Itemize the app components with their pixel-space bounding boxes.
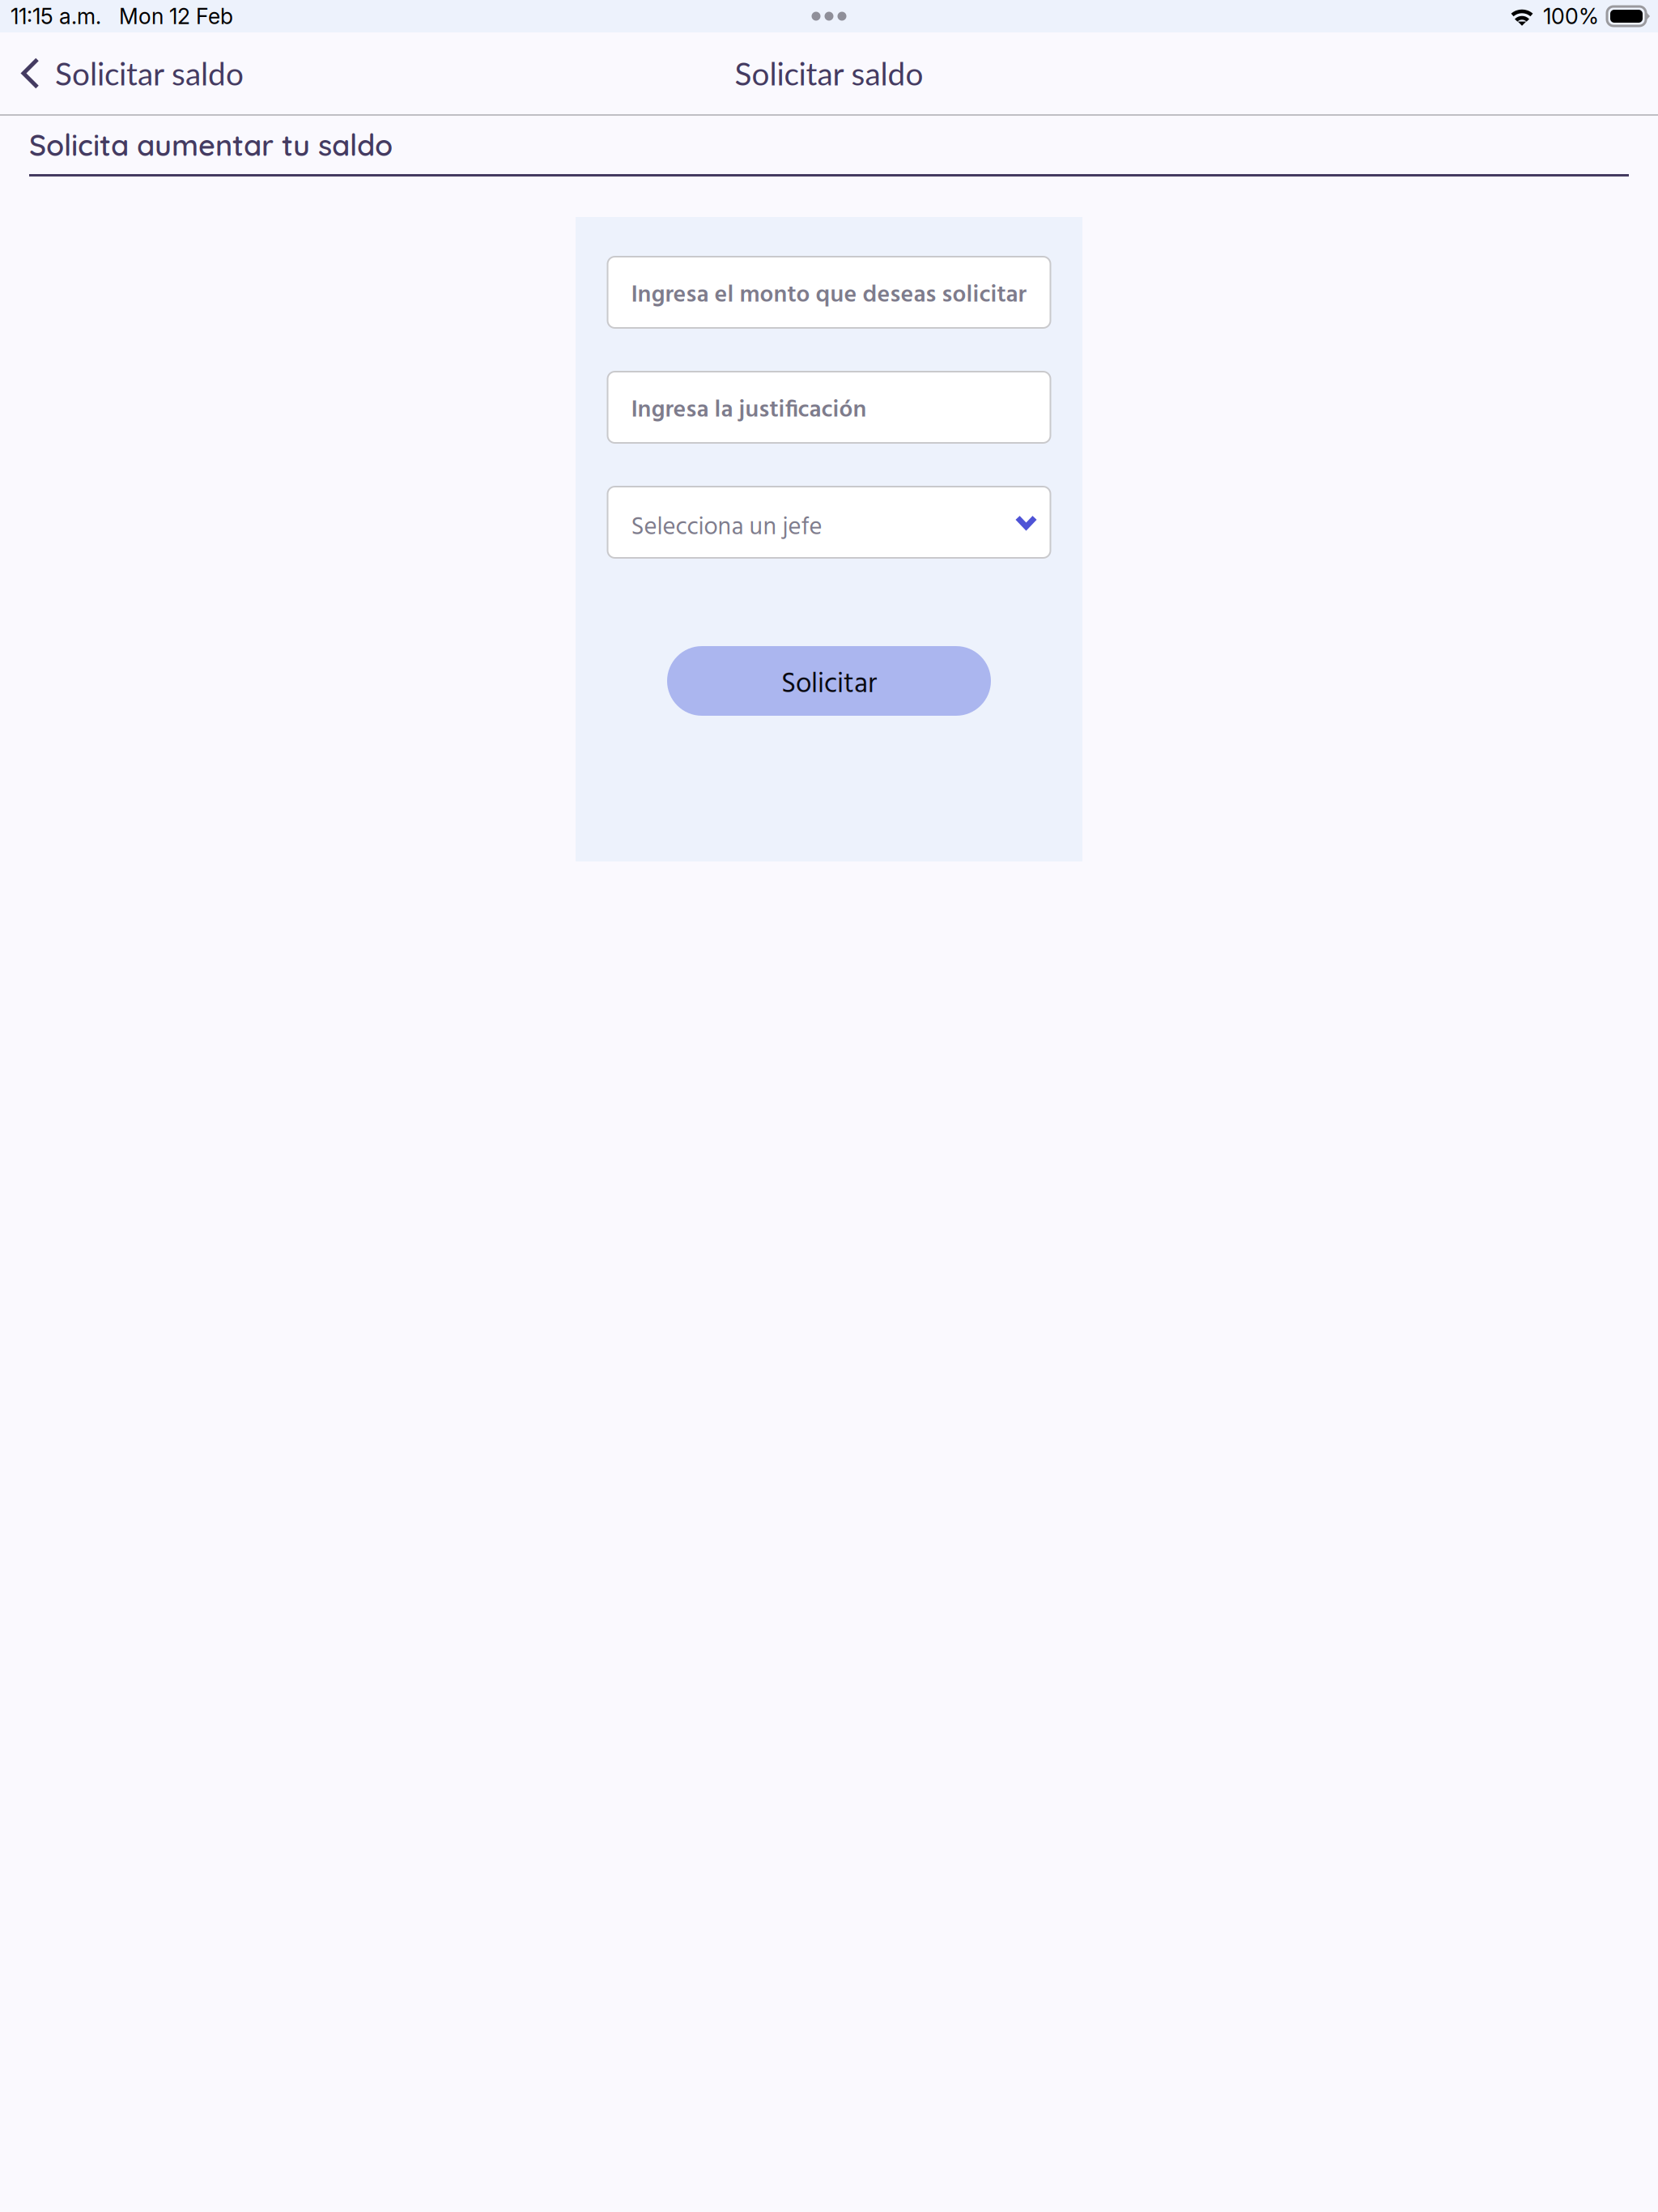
staticText: Solicitar saldo	[735, 54, 923, 92]
button[interactable]: Ingresa el monto que deseas solicitar	[608, 257, 1050, 328]
staticText: 11:15 a.m.	[11, 3, 101, 29]
button[interactable]: Solicitar saldo	[0, 32, 258, 114]
button[interactable]: Ingresa la justificación	[608, 372, 1050, 443]
staticText: Solicita aumentar tu saldo	[29, 127, 393, 163]
staticText: Ingresa la justificación	[631, 391, 867, 430]
staticText: Ingresa el monto que deseas solicitar	[631, 276, 1026, 315]
staticText: Solicitar	[781, 662, 877, 707]
staticText: Solicitar saldo	[55, 54, 244, 92]
button[interactable]: Solicitar	[667, 646, 991, 716]
staticText: Selecciona un jefe	[631, 508, 822, 548]
staticText: Mon 12 Feb	[119, 3, 233, 29]
staticText: 100%	[1543, 3, 1599, 29]
button[interactable]: Selecciona un jefe	[608, 487, 1050, 558]
